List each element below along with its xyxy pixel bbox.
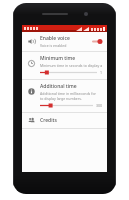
staticText: Additional time [40,83,77,90]
button[interactable]: Credits [22,113,107,128]
staticText: Minimum time [40,55,76,62]
staticText: Additional time in milliseconds for each… [40,91,103,96]
staticText: Minimum time in seconds to display a num… [40,63,103,68]
staticText: Enable voice [40,35,70,42]
staticText: 1 [100,70,103,75]
staticText: to display large numbers. [40,96,82,101]
staticText: 300 [96,103,103,108]
staticText: Credits [40,117,57,124]
button[interactable]: Minimum time [22,52,107,79]
staticText: Voice is enabled [40,43,67,48]
button[interactable]: Additional time [22,80,107,112]
button[interactable]: Enable voice [22,32,107,51]
